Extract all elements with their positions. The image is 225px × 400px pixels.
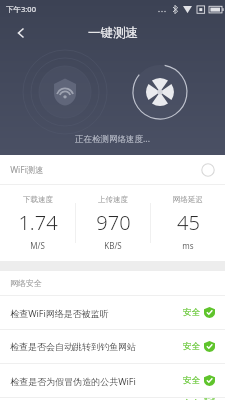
staticText: 安全: [183, 398, 200, 400]
button[interactable]: Back: [6, 18, 36, 48]
staticText: 网络延迟: [173, 195, 203, 204]
staticText: 正在检测网络速度...: [75, 133, 150, 145]
staticText: 上传速度: [98, 195, 128, 204]
button[interactable]: 下载速度: [0, 195, 75, 251]
button[interactable]: 上传速度: [76, 195, 150, 251]
button[interactable]: 检查是否会自动跳转到钓鱼网站: [0, 330, 225, 363]
staticText: 检查是否为假冒伪造的公共WiFi: [10, 375, 136, 387]
staticText: 安全: [183, 375, 200, 386]
staticText: M/S: [30, 240, 45, 251]
staticText: 安全: [183, 307, 200, 318]
staticText: 1.74: [18, 209, 58, 236]
staticText: 安全: [183, 341, 200, 352]
button[interactable]: 检查是否为钓鱼WiFi: [0, 398, 225, 400]
staticText: 下午3:00: [6, 4, 36, 14]
button[interactable]: 检查是否为假冒伪造的公共WiFi: [0, 364, 225, 397]
staticText: 45: [177, 209, 200, 236]
button[interactable]: WiFi测速: [0, 155, 225, 184]
staticText: 970: [96, 209, 131, 236]
staticText: ms: [182, 240, 194, 251]
button[interactable]: 网络延迟: [151, 195, 225, 251]
staticText: 下载速度: [23, 195, 53, 204]
staticText: 检查WiFi网络是否被监听: [10, 307, 109, 319]
staticText: WiFi测速: [10, 164, 44, 176]
staticText: KB/S: [104, 240, 122, 251]
staticText: 一键测速: [88, 25, 138, 41]
staticText: 网络安全: [10, 278, 42, 288]
staticText: 检查是否会自动跳转到钓鱼网站: [10, 341, 136, 352]
button[interactable]: 检查WiFi网络是否被监听: [0, 296, 225, 329]
